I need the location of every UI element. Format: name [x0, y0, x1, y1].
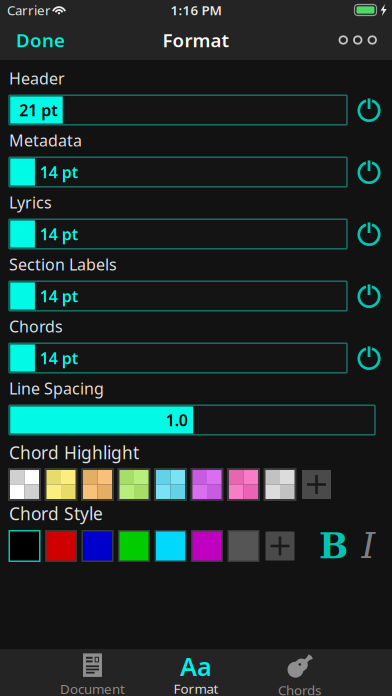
button[interactable]: Reset Metadata [352, 156, 386, 188]
staticText: I [361, 526, 375, 566]
staticText: Format [173, 680, 218, 696]
button[interactable]: Highlight colour [154, 469, 187, 500]
staticText: Chords [278, 681, 321, 696]
button[interactable]: Add colour [300, 469, 333, 500]
button[interactable]: Aa [144, 649, 248, 696]
staticText: 1.0 [166, 409, 188, 431]
staticText: Document [60, 680, 125, 696]
button[interactable]: Chord colour [81, 530, 114, 561]
button[interactable]: Chord colour [8, 530, 41, 561]
button[interactable]: Reset Chords [352, 342, 386, 374]
staticText: Line Spacing [9, 378, 104, 399]
staticText: Aa [180, 649, 212, 683]
button[interactable]: Highlight colour [227, 469, 260, 500]
button[interactable]: Done [0, 20, 75, 60]
staticText: Lyrics [9, 192, 52, 213]
button[interactable]: Highlight colour [44, 469, 77, 500]
button[interactable]: Chord colour [117, 530, 150, 561]
staticText: Carrier [7, 1, 51, 19]
button[interactable]: Highlight colour [8, 469, 41, 500]
button[interactable]: Italic [357, 530, 379, 562]
button[interactable]: Bold [318, 530, 348, 562]
button[interactable]: Chord colour [227, 530, 260, 561]
button[interactable]: Highlight colour [81, 469, 114, 500]
button[interactable]: Reset Lyrics [352, 218, 386, 250]
staticText: B [319, 526, 348, 566]
staticText: 14 pt [40, 285, 78, 307]
button[interactable]: Add colour [263, 530, 296, 561]
staticText: Chord Highlight [9, 441, 139, 464]
button[interactable]: Highlight colour [263, 469, 296, 500]
staticText: Header [9, 68, 65, 89]
button[interactable]: Chord colour [44, 530, 77, 561]
staticText: Format [162, 28, 229, 52]
staticText: Done [16, 28, 65, 52]
staticText: Metadata [9, 130, 82, 151]
button[interactable]: Chords [248, 649, 351, 696]
staticText: 14 pt [40, 161, 78, 183]
button[interactable]: Document [41, 649, 144, 696]
button[interactable]: More options [329, 20, 392, 60]
button[interactable]: Chord colour [190, 530, 223, 561]
staticText: 21 pt [19, 99, 57, 121]
staticText: Section Labels [9, 254, 117, 275]
staticText: 14 pt [40, 223, 78, 245]
staticText: 14 pt [40, 347, 78, 369]
staticText: Chord Style [9, 502, 103, 525]
button[interactable]: Reset Section Labels [352, 280, 386, 312]
button[interactable]: Chord colour [154, 530, 187, 561]
button[interactable]: Reset Header [352, 94, 386, 126]
button[interactable]: Highlight colour [117, 469, 150, 500]
staticText: 1:16 PM [170, 1, 221, 19]
button[interactable]: Highlight colour [190, 469, 223, 500]
staticText: Chords [9, 316, 63, 337]
